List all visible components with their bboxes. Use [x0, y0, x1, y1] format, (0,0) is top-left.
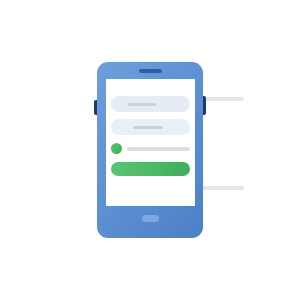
other: Volume key: [94, 100, 99, 115]
button[interactable]: Password field: [111, 119, 190, 135]
button[interactable]: Submit: [111, 162, 190, 176]
button[interactable]: Account row: [111, 143, 190, 154]
button[interactable]: Home: [142, 215, 159, 222]
button[interactable]: Email field: [111, 96, 190, 112]
other: Power key: [201, 96, 206, 115]
